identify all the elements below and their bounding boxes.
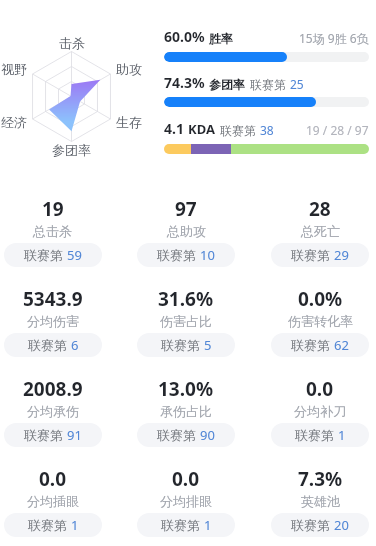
button[interactable]: 31.6%	[119, 281, 253, 371]
staticText: 总击杀	[33, 223, 72, 239]
staticText: 7.3%	[298, 466, 343, 492]
staticText: 19	[42, 196, 64, 222]
staticText: 分均补刀	[294, 403, 346, 419]
staticText: 25	[290, 76, 304, 92]
staticText: 28	[309, 196, 331, 222]
button[interactable]: 0.0	[0, 461, 119, 546]
staticText: 10	[200, 246, 215, 264]
staticText: 60.0%	[164, 27, 205, 46]
staticText: 97	[175, 196, 197, 222]
staticText: 伤害占比	[160, 313, 212, 329]
button[interactable]: 7.3%	[253, 461, 376, 546]
staticText: 74.3%	[164, 73, 205, 92]
staticText: 参团率	[209, 77, 245, 92]
staticText: 91	[67, 426, 82, 444]
staticText: 38	[260, 122, 274, 138]
staticText: 联赛第	[220, 122, 260, 138]
button[interactable]: 0.0	[253, 371, 376, 461]
staticText: 13.0%	[158, 376, 214, 402]
staticText: 分均承伤	[27, 403, 79, 419]
staticText: 62	[334, 336, 349, 354]
staticText: 联赛第	[157, 246, 200, 264]
staticText: 4.1	[164, 119, 184, 138]
button[interactable]: 5343.9	[0, 281, 119, 371]
staticText: 0.0	[172, 466, 200, 492]
staticText: 总死亡	[301, 223, 340, 239]
staticText: 联赛第	[28, 516, 71, 534]
staticText: 联赛第	[295, 426, 338, 444]
staticText: 分均伤害	[27, 313, 79, 329]
staticText: 联赛第	[28, 336, 71, 354]
staticText: 15场 9胜 6负	[299, 30, 369, 46]
staticText: 联赛第	[24, 246, 67, 264]
button[interactable]: 2008.9	[0, 371, 119, 461]
staticText: 59	[67, 246, 82, 264]
staticText: 31.6%	[158, 286, 214, 312]
staticText: 参团率	[52, 142, 91, 158]
staticText: 5	[204, 336, 212, 354]
staticText: 2008.9	[23, 376, 83, 402]
staticText: 总助攻	[167, 223, 206, 239]
button[interactable]: 0.0	[119, 461, 253, 546]
staticText: 分均排眼	[160, 493, 212, 509]
staticText: 1	[71, 516, 79, 534]
staticText: 联赛第	[291, 516, 334, 534]
staticText: 联赛第	[161, 336, 204, 354]
staticText: 经济	[1, 114, 27, 130]
staticText: 19 / 28 / 97	[306, 122, 369, 138]
button[interactable]: 0.0%	[253, 281, 376, 371]
staticText: 生存	[116, 114, 142, 130]
staticText: 分均插眼	[27, 493, 79, 509]
staticText: 联赛第	[291, 246, 334, 264]
button[interactable]: 19	[0, 191, 119, 281]
staticText: 0.0%	[298, 286, 343, 312]
staticText: 联赛第	[250, 76, 290, 92]
staticText: 视野	[1, 61, 27, 77]
staticText: KDA	[188, 120, 215, 138]
staticText: 联赛第	[161, 516, 204, 534]
staticText: 联赛第	[24, 426, 67, 444]
staticText: 0.0	[306, 376, 334, 402]
staticText: 0.0	[39, 466, 67, 492]
staticText: 联赛第	[157, 426, 200, 444]
staticText: 90	[200, 426, 215, 444]
button[interactable]: 13.0%	[119, 371, 253, 461]
staticText: 1	[204, 516, 212, 534]
button[interactable]: 97	[119, 191, 253, 281]
staticText: 伤害转化率	[288, 313, 353, 329]
staticText: 1	[338, 426, 346, 444]
button[interactable]: 28	[253, 191, 376, 281]
staticText: 29	[334, 246, 349, 264]
staticText: 助攻	[116, 61, 142, 77]
staticText: 20	[334, 516, 349, 534]
staticText: 承伤占比	[160, 403, 212, 419]
staticText: 击杀	[59, 35, 85, 51]
staticText: 5343.9	[23, 286, 83, 312]
staticText: 胜率	[209, 31, 233, 46]
staticText: 联赛第	[291, 336, 334, 354]
staticText: 6	[71, 336, 79, 354]
staticText: 英雄池	[301, 493, 340, 509]
